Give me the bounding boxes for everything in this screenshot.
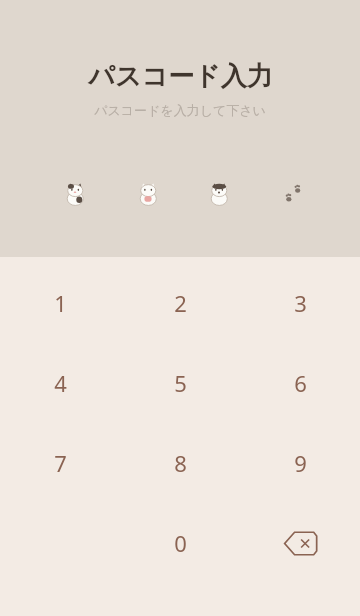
button[interactable]: 2 — [143, 269, 217, 337]
button[interactable]: 1 — [23, 269, 97, 337]
button[interactable]: Delete — [263, 509, 337, 577]
button[interactable]: 0 — [143, 509, 217, 577]
button[interactable]: 8 — [143, 429, 217, 497]
staticText: パスコード入力 — [88, 60, 273, 93]
staticText: 2 — [174, 288, 187, 318]
button[interactable]: 6 — [263, 349, 337, 417]
button[interactable]: 9 — [263, 429, 337, 497]
staticText: 0 — [174, 528, 187, 558]
staticText: 5 — [174, 368, 187, 398]
button[interactable]: 7 — [23, 429, 97, 497]
button[interactable]: 4 — [23, 349, 97, 417]
staticText: 6 — [294, 368, 307, 398]
staticText: 3 — [294, 288, 307, 318]
button[interactable]: 5 — [143, 349, 217, 417]
staticText: 4 — [54, 368, 67, 398]
staticText: 1 — [54, 288, 67, 318]
button[interactable]: 3 — [263, 269, 337, 337]
staticText: パスコードを入力して下さい — [94, 102, 266, 118]
staticText: 8 — [174, 448, 187, 478]
staticText: 7 — [54, 448, 67, 478]
staticText: 9 — [294, 448, 307, 478]
